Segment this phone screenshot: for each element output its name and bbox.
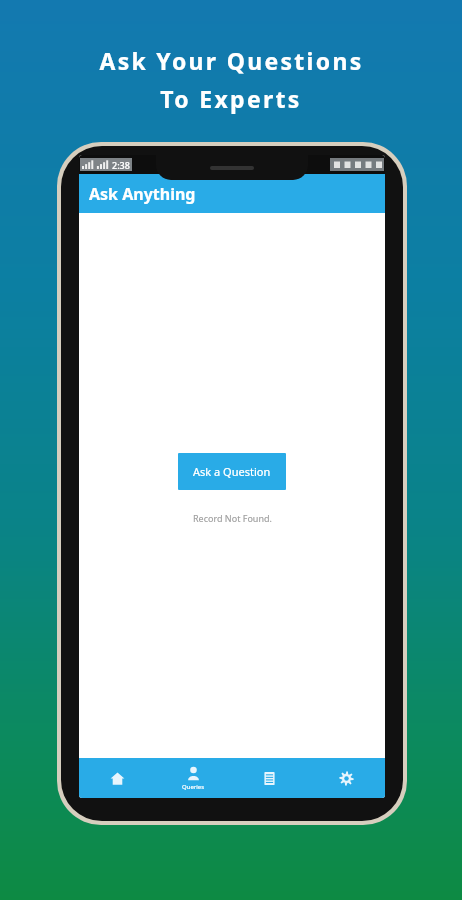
staticText: To Experts xyxy=(160,83,302,114)
button[interactable]: Home xyxy=(79,758,155,798)
staticText: Queries xyxy=(182,783,205,791)
button[interactable]: Documents xyxy=(231,758,308,798)
button[interactable]: Settings xyxy=(308,758,385,798)
button[interactable]: Ask a Question xyxy=(178,453,286,490)
staticText: Ask Anything xyxy=(89,183,196,205)
staticText: Ask a Question xyxy=(193,464,271,479)
staticText: Record Not Found. xyxy=(193,512,272,524)
staticText: Ask Your Questions xyxy=(99,45,364,76)
button[interactable]: Queries xyxy=(155,758,231,798)
staticText: 2:38 xyxy=(112,159,130,171)
